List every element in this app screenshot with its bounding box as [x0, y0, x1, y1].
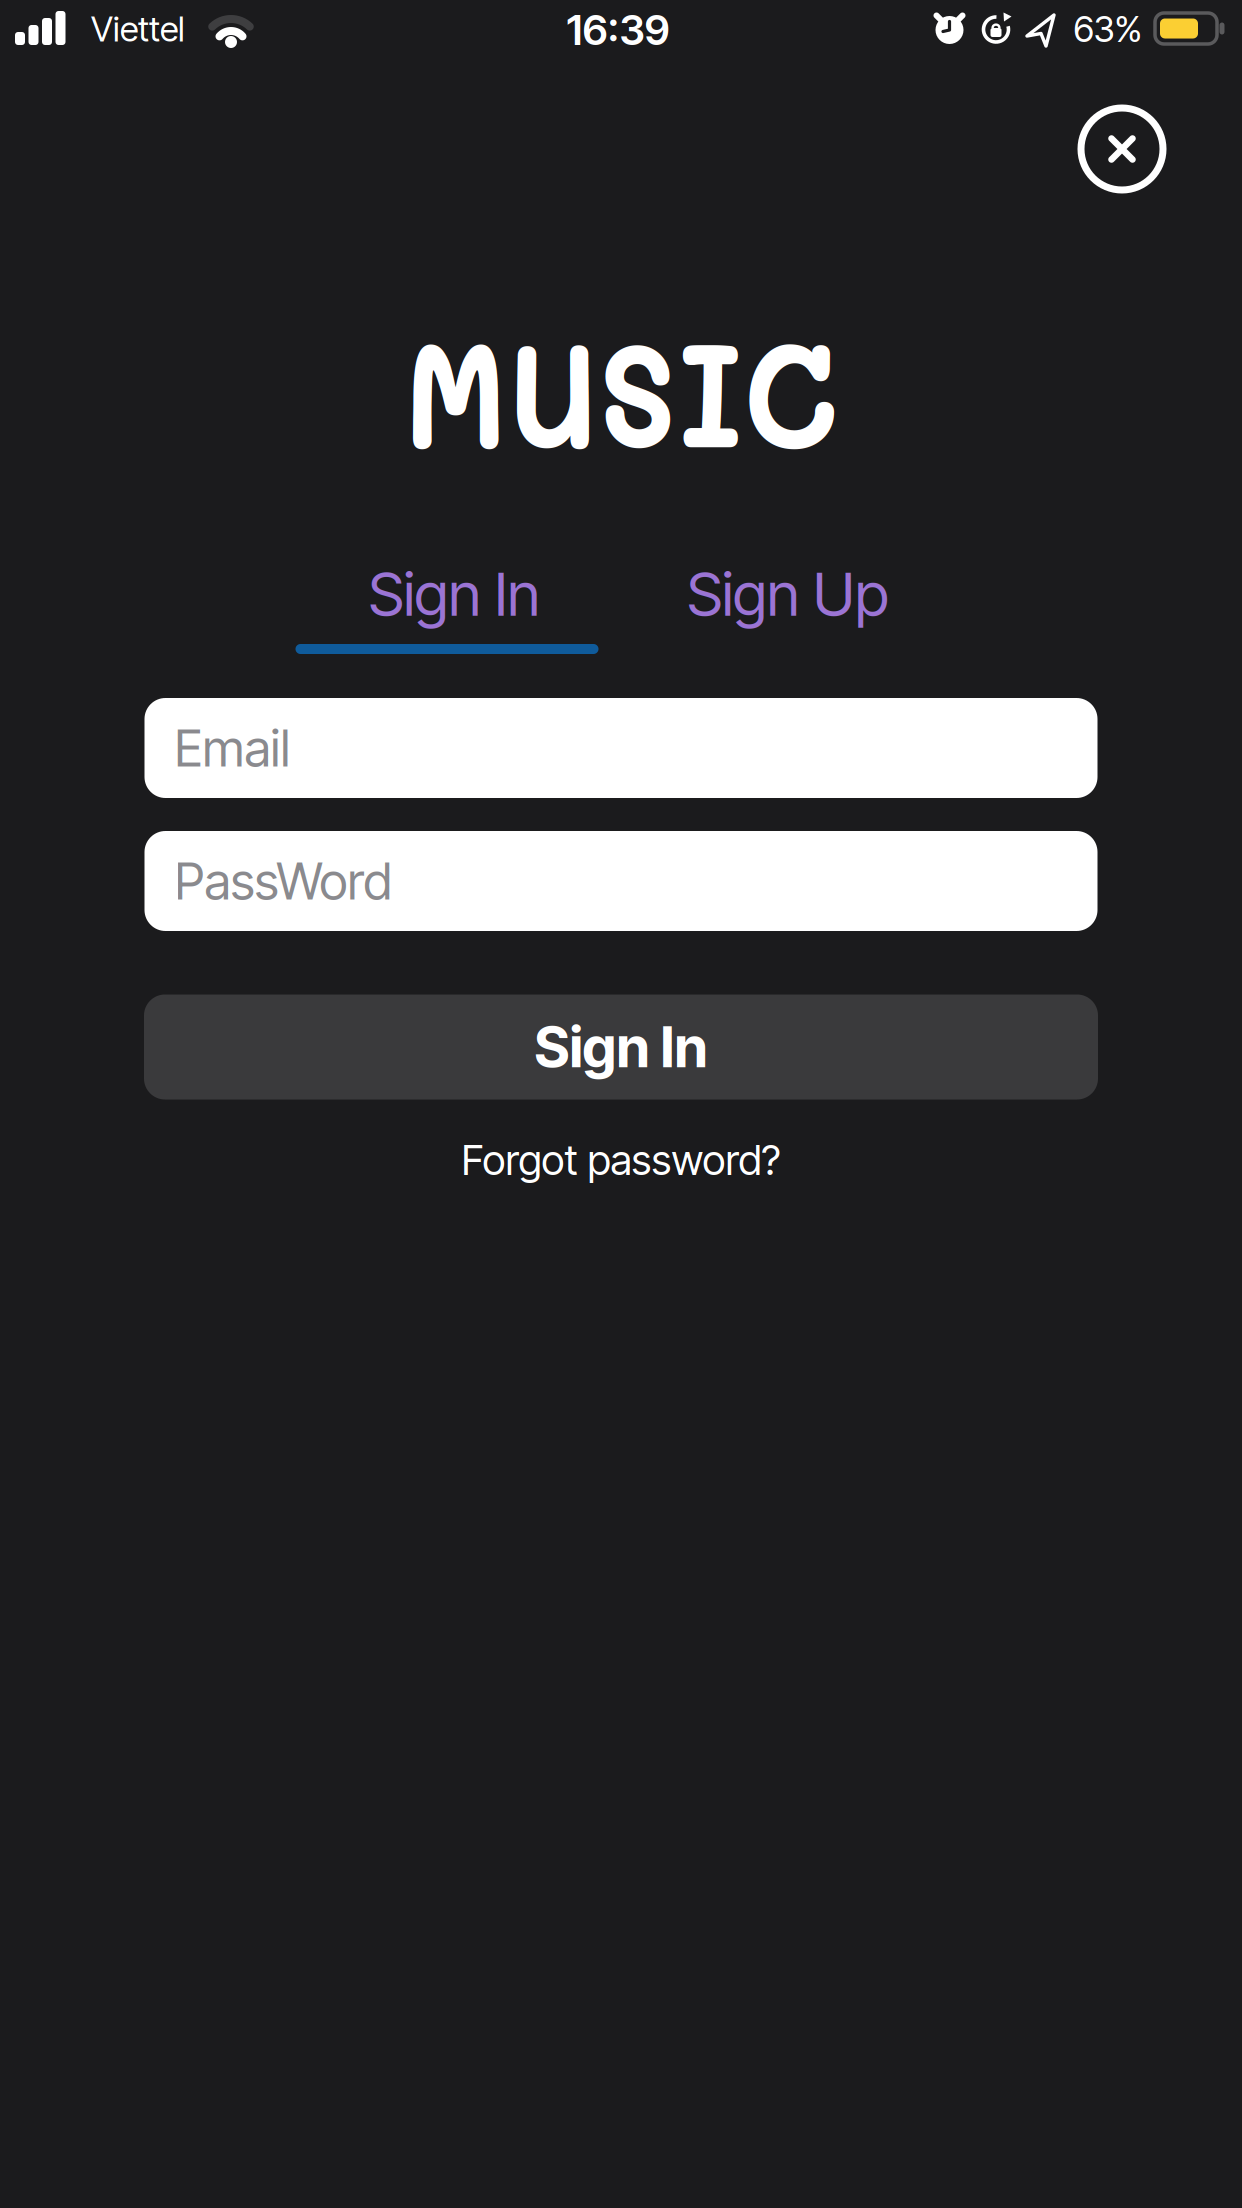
staticText: Viettel — [91, 9, 185, 49]
staticText: MUSIC — [374, 295, 867, 484]
staticText: Email — [174, 718, 290, 778]
button[interactable]: Sign In — [274, 544, 634, 644]
button[interactable]: PassWord — [144, 831, 1097, 931]
staticText: 16:39 — [566, 6, 669, 54]
button[interactable]: Sign Up — [608, 544, 968, 644]
button[interactable]: Forgot password? — [461, 1136, 780, 1184]
button[interactable] — [1081, 108, 1163, 190]
button[interactable]: Email — [144, 698, 1097, 798]
button[interactable]: Sign In — [144, 994, 1098, 1099]
staticText: Sign Up — [687, 559, 889, 629]
staticText: 63% — [1073, 8, 1142, 50]
staticText: Sign In — [534, 1014, 707, 1080]
staticText: PassWord — [174, 851, 391, 911]
staticText: Sign In — [368, 559, 539, 629]
staticText: Forgot password? — [461, 1136, 780, 1184]
